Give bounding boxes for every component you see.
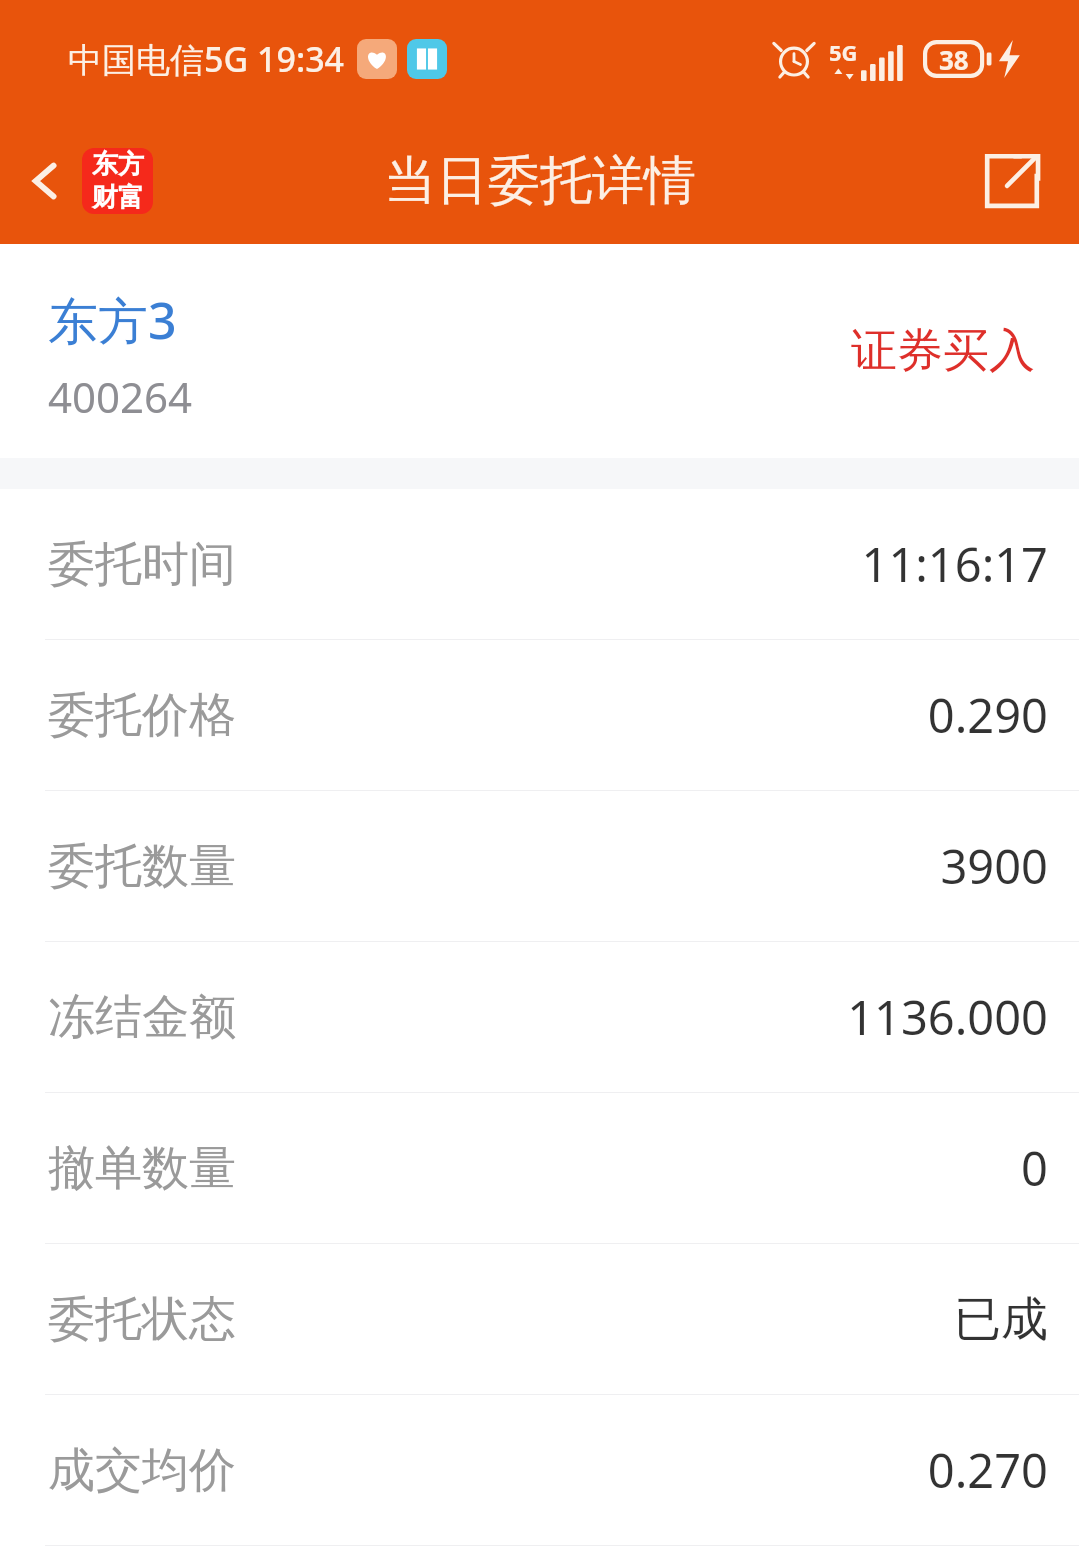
- button[interactable]: East Money logo: [82, 148, 153, 214]
- staticText: 委托时间: [48, 535, 236, 594]
- staticText: 财富: [92, 181, 144, 214]
- button[interactable]: 撤单数量: [0, 1093, 1079, 1243]
- button[interactable]: 委托数量: [0, 791, 1079, 941]
- staticText: 已成: [954, 1290, 1048, 1349]
- button[interactable]: 委托价格: [0, 640, 1079, 790]
- staticText: 38: [939, 42, 969, 77]
- button[interactable]: 冻结金额: [0, 942, 1079, 1092]
- staticText: 当日委托详情: [384, 148, 696, 214]
- button[interactable]: 委托状态: [0, 1244, 1079, 1394]
- staticText: 委托状态: [48, 1290, 236, 1349]
- button[interactable]: 成交均价: [0, 1395, 1079, 1545]
- button[interactable]: Back: [6, 142, 84, 220]
- staticText: 1136.000: [847, 985, 1048, 1049]
- staticText: 0.270: [927, 1438, 1048, 1502]
- button[interactable]: Share: [969, 138, 1055, 224]
- staticText: 委托数量: [48, 837, 236, 896]
- staticText: 5G: [829, 37, 858, 67]
- staticText: 东方: [92, 148, 144, 181]
- staticText: 证券买入: [851, 322, 1035, 380]
- button[interactable]: 委托时间: [0, 489, 1079, 639]
- staticText: 撤单数量: [48, 1139, 236, 1198]
- staticText: 成交均价: [48, 1441, 236, 1500]
- staticText: 0: [1021, 1136, 1048, 1200]
- staticText: 委托价格: [48, 686, 236, 745]
- staticText: 东方3: [48, 286, 177, 354]
- staticText: 11:16:17: [861, 532, 1048, 596]
- button[interactable]: 东方3: [0, 244, 1079, 458]
- staticText: 0.290: [927, 683, 1048, 747]
- staticText: 400264: [48, 368, 193, 425]
- staticText: 冻结金额: [48, 988, 236, 1047]
- staticText: 3900: [940, 834, 1048, 898]
- staticText: 中国电信5G 19:34: [68, 36, 345, 82]
